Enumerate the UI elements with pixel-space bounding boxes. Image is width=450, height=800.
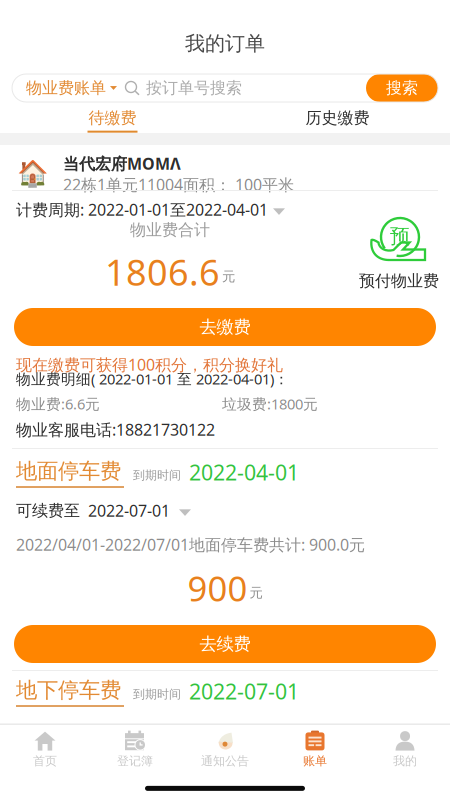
button[interactable]: 搜索 — [366, 74, 438, 102]
button[interactable]: 待缴费 — [0, 108, 225, 133]
staticText: 首页 — [33, 754, 57, 768]
staticText: 元 — [222, 268, 235, 285]
staticText: 现在缴费可获得100积分，积分换好礼 — [16, 354, 283, 375]
staticText: 2022-07-01 — [189, 677, 299, 705]
staticText: 账单 — [303, 754, 327, 768]
staticText: 物业费合计 — [130, 220, 210, 240]
staticText: 物业费账单 — [26, 78, 106, 98]
staticText: 地下停车费 — [16, 677, 121, 703]
staticText: 计费周期: 2022-01-01至2022-04-01 — [16, 199, 268, 220]
staticText: 通知公告 — [201, 754, 249, 768]
staticText: 地面停车费 — [16, 458, 121, 484]
staticText: 可续费至 — [16, 501, 80, 520]
button[interactable]: 我的订单 — [0, 31, 450, 56]
staticText: 22栋1单元11004面积： 100平米 — [63, 174, 294, 195]
button[interactable]: 账单 — [270, 725, 360, 773]
staticText: 我的订单 — [185, 31, 265, 56]
staticText: 搜索 — [386, 78, 418, 98]
staticText: 去缴费 — [199, 316, 250, 338]
staticText: 预付物业费 — [359, 271, 439, 291]
staticText: 垃圾费:1800元 — [222, 394, 318, 413]
staticText: 🏠 — [17, 159, 49, 188]
staticText: 到期时间 — [133, 468, 181, 483]
button[interactable]: 通知公告 — [180, 725, 270, 773]
staticText: 我的 — [393, 754, 417, 768]
button[interactable]: 预 — [344, 217, 450, 291]
staticText: 物业客服电话:18821730122 — [16, 419, 215, 440]
button[interactable]: 登记簿 — [90, 725, 180, 773]
staticText: 到期时间 — [133, 687, 181, 702]
staticText: 当代宏府MOMΛ — [63, 153, 181, 174]
staticText: 物业费明细( 2022-01-01 至 2022-04-01)： — [16, 369, 289, 388]
staticText: 预 — [390, 224, 410, 249]
staticText: 历史缴费 — [305, 108, 369, 128]
staticText: 1806.6 — [105, 248, 220, 296]
button[interactable]: 历史缴费 — [225, 108, 450, 133]
staticText: 物业费:6.6元 — [16, 394, 100, 413]
staticText: 按订单号搜索 — [146, 78, 242, 98]
staticText: 900 — [187, 565, 247, 611]
button[interactable]: 首页 — [0, 725, 90, 773]
staticText: 待缴费 — [88, 108, 136, 128]
button[interactable]: 去续费 — [14, 625, 436, 663]
staticText: 2022-07-01 — [88, 500, 170, 521]
staticText: 登记簿 — [117, 754, 153, 768]
staticText: 2022-04-01 — [189, 458, 299, 486]
button[interactable]: 物业费账单 — [12, 74, 125, 102]
button[interactable]: 我的 — [360, 725, 450, 773]
staticText: 元 — [249, 585, 262, 601]
button[interactable]: 去缴费 — [14, 308, 436, 346]
staticText: 2022/04/01-2022/07/01地面停车费共计: 900.0元 — [16, 534, 365, 555]
staticText: 去续费 — [199, 633, 250, 655]
